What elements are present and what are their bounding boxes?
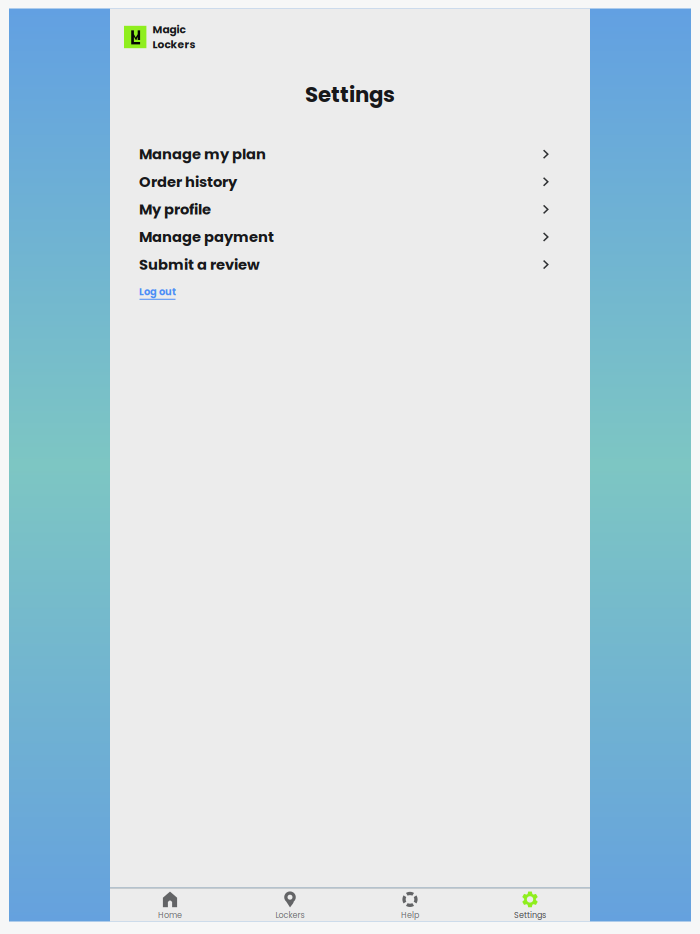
button[interactable]: Settings xyxy=(470,888,590,921)
button[interactable]: Help xyxy=(350,888,470,921)
button[interactable]: Log out xyxy=(139,283,549,301)
button[interactable]: Manage my plan xyxy=(139,140,549,168)
staticText: Help xyxy=(401,910,419,921)
staticText: Lockers xyxy=(275,910,304,921)
button[interactable]: Submit a review xyxy=(139,251,549,278)
staticText: Log out xyxy=(139,285,176,299)
staticText: Lockers xyxy=(152,37,195,52)
staticText: My profile xyxy=(139,199,211,220)
staticText: Magic xyxy=(152,22,185,37)
button[interactable]: Order history xyxy=(139,168,549,196)
staticText: Manage my plan xyxy=(139,144,266,164)
staticText: Settings xyxy=(514,910,546,921)
button[interactable]: My profile xyxy=(139,196,549,223)
staticText: Home xyxy=(158,910,182,921)
staticText: Manage payment xyxy=(139,227,274,247)
staticText: Order history xyxy=(139,171,237,192)
button[interactable]: Manage payment xyxy=(139,223,549,251)
button[interactable]: Lockers xyxy=(230,888,350,921)
staticText: Settings xyxy=(305,79,395,109)
staticText: Submit a review xyxy=(139,254,260,275)
button[interactable]: Home xyxy=(110,888,230,921)
